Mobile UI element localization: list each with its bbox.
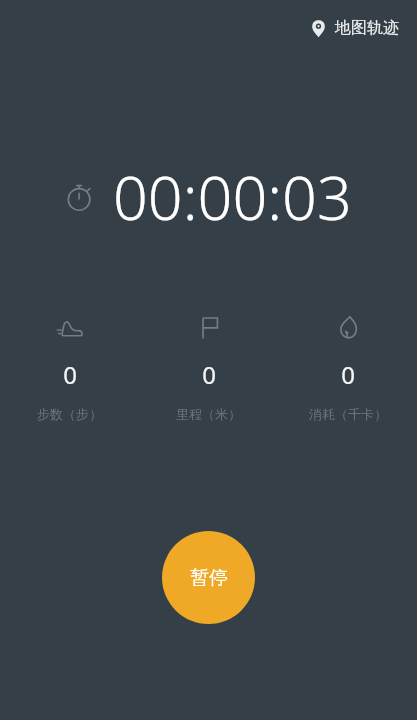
staticText: 步数（步） [37,406,102,422]
button[interactable]: 0 [0,312,139,422]
button[interactable]: 0 [278,312,417,422]
staticText: 00:00:03 [113,155,352,238]
staticText: 消耗（千卡） [309,406,387,422]
staticText: 0 [341,358,355,391]
button[interactable]: 地图轨迹 [305,14,403,42]
staticText: 0 [202,358,216,391]
staticText: 0 [63,358,77,391]
button[interactable]: 0 [139,312,278,422]
staticText: 里程（米） [176,406,241,422]
staticText: 暂停 [190,566,228,590]
button[interactable]: 暂停 [162,531,255,624]
staticText: 地图轨迹 [335,18,399,38]
